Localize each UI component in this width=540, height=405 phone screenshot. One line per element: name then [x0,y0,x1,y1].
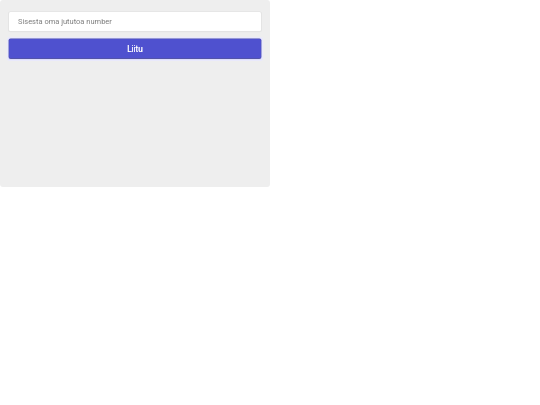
staticText: Liitu [127,44,143,54]
button[interactable]: Liitu [9,39,261,58]
staticText: Sisesta oma jututoa number [18,17,112,26]
button[interactable]: Sisesta oma jututoa number [9,12,261,31]
